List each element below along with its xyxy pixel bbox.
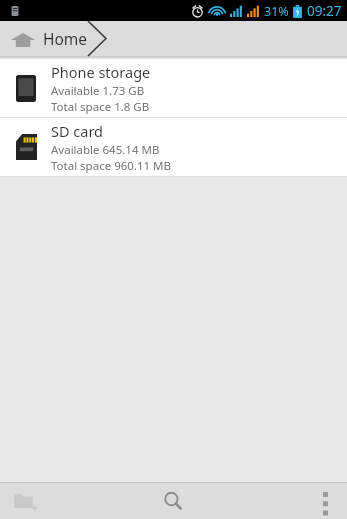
staticText: Available 645.14 MB: [51, 142, 160, 158]
button[interactable]: Search: [115, 483, 231, 519]
staticText: SD card: [51, 121, 104, 141]
button[interactable]: SD card: [0, 118, 347, 176]
staticText: Total space 1.8 GB: [51, 99, 150, 115]
staticText: 09:27: [307, 2, 342, 20]
button[interactable]: More options: [231, 483, 347, 519]
staticText: Total space 960.11 MB: [51, 158, 172, 174]
button[interactable]: Phone storage: [0, 59, 347, 117]
button[interactable]: Home: [0, 21, 347, 56]
staticText: Home: [43, 28, 88, 49]
button[interactable]: New folder: [0, 483, 115, 519]
staticText: Phone storage: [51, 62, 151, 82]
staticText: 31%: [264, 3, 289, 20]
staticText: Available 1.73 GB: [51, 83, 145, 99]
